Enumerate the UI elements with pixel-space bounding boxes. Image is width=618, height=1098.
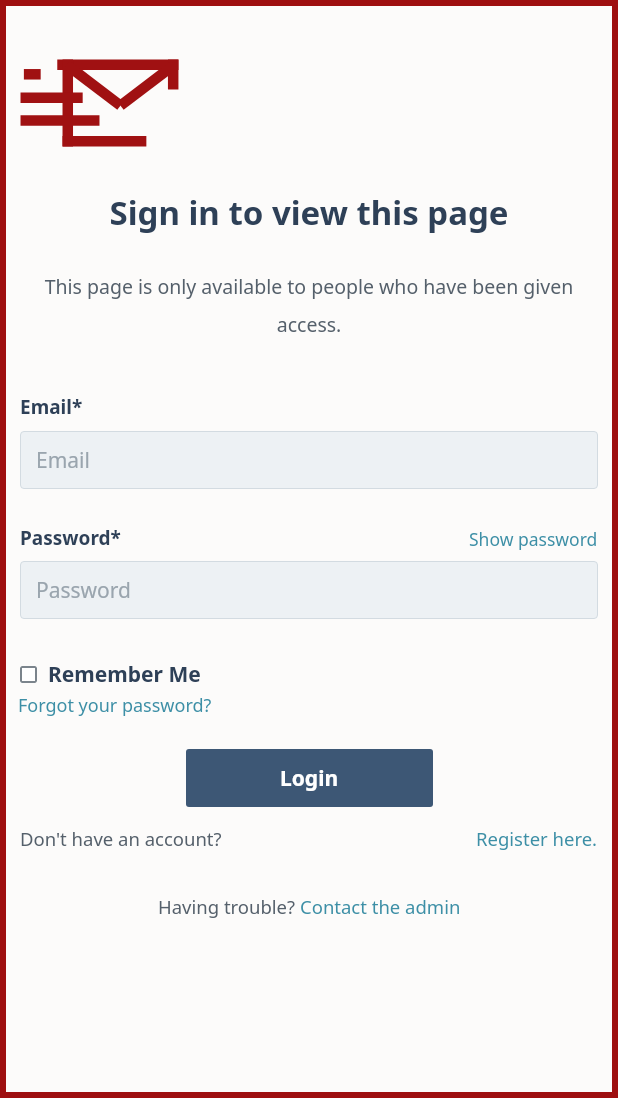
button[interactable]: Remember Me	[20, 660, 201, 689]
button[interactable]: Contact the admin	[300, 894, 461, 919]
staticText: Email	[36, 446, 90, 475]
staticText: Password	[36, 576, 131, 605]
staticText: Having trouble?	[158, 894, 300, 919]
button[interactable]: Email	[20, 431, 598, 489]
staticText: This page is only available to people wh…	[36, 273, 582, 338]
staticText: Show password	[469, 527, 598, 551]
staticText: Remember Me	[48, 660, 201, 689]
staticText: Contact the admin	[300, 894, 461, 919]
staticText: Password*	[20, 525, 121, 551]
staticText: Sign in to view this page	[6, 190, 612, 235]
staticText: Email*	[20, 394, 83, 420]
button[interactable]: Password	[20, 561, 598, 619]
button[interactable]: Show password	[469, 527, 598, 551]
button[interactable]: Register here.	[476, 826, 598, 851]
other: App logo	[18, 54, 186, 154]
staticText: Register here.	[476, 826, 598, 851]
button[interactable]: Forgot your password?	[18, 693, 212, 718]
staticText: Login	[280, 764, 339, 793]
staticText: Don't have an account?	[20, 826, 222, 851]
staticText: Forgot your password?	[18, 693, 212, 718]
button[interactable]: Login	[186, 749, 433, 807]
